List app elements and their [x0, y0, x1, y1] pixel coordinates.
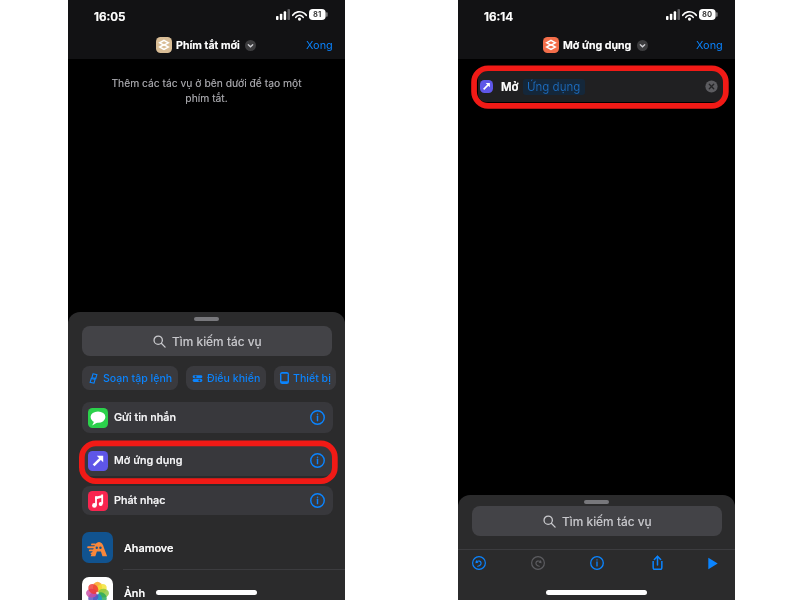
staticText: Xong [696, 38, 723, 51]
staticText: Ứng dụng [527, 80, 581, 94]
staticText: Soạn tập lệnh [103, 372, 173, 385]
staticText: Mở ứng dụng [114, 454, 183, 467]
staticText: Ảnh [124, 586, 146, 599]
staticText: Tìm kiếm tác vụ [562, 514, 652, 529]
button[interactable]: Run [706, 557, 719, 570]
staticText: 80 [702, 10, 713, 19]
staticText: Gửi tin nhắn [114, 411, 176, 424]
button[interactable]: Mở ứng dụng [82, 445, 333, 476]
button[interactable]: Info [590, 556, 604, 570]
button[interactable]: Tìm kiếm tác vụ [82, 326, 332, 356]
staticText: 16:14 [484, 10, 514, 24]
button[interactable]: Phím tắt mới [156, 37, 256, 53]
button[interactable]: Redo [531, 556, 545, 570]
staticText: Điều khiển [207, 372, 261, 385]
staticText: Thiết bị [293, 372, 331, 385]
button[interactable]: Mở ứng dụng [543, 37, 648, 53]
button[interactable]: Phát nhạc [82, 486, 333, 515]
button[interactable]: More options [637, 40, 648, 51]
button[interactable]: Ahamove [82, 532, 332, 563]
button[interactable]: Xong [306, 38, 333, 51]
button[interactable]: Share [650, 555, 665, 570]
button[interactable]: Info [310, 493, 325, 508]
staticText: Mở [501, 80, 519, 94]
button[interactable]: Xong [696, 38, 723, 51]
staticText: Ahamove [124, 541, 174, 554]
staticText: Xong [306, 38, 333, 51]
button[interactable]: Info [310, 453, 325, 468]
staticText: 16:05 [94, 10, 126, 24]
button[interactable]: More options [245, 40, 256, 51]
staticText: Phím tắt mới [176, 39, 240, 52]
button[interactable]: Ảnh [82, 577, 332, 600]
button[interactable]: Mở [478, 71, 725, 102]
staticText: Thêm các tác vụ ở bên dưới để tạo một ph… [109, 77, 304, 105]
button[interactable]: Thiết bị [274, 366, 336, 390]
staticText: Mở ứng dụng [563, 39, 632, 52]
staticText: Tìm kiếm tác vụ [172, 334, 262, 349]
button[interactable]: Info [310, 410, 325, 425]
button[interactable]: Gửi tin nhắn [82, 402, 333, 433]
button[interactable]: Undo [472, 556, 486, 570]
button[interactable]: Điều khiển [186, 366, 266, 390]
button[interactable]: Clear [705, 80, 718, 93]
button[interactable]: Soạn tập lệnh [82, 366, 178, 390]
staticText: Phát nhạc [114, 494, 166, 507]
button[interactable]: Tìm kiếm tác vụ [472, 506, 722, 536]
staticText: 81 [313, 10, 322, 19]
